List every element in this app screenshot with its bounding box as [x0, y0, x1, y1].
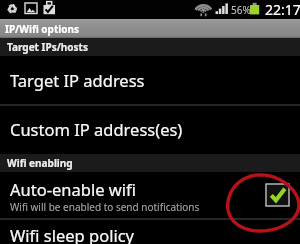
button[interactable]: IP/Wifi options — [0, 19, 300, 38]
staticText: Target IPs/hosts — [7, 40, 88, 54]
button[interactable]: Auto-enable wifi — [0, 172, 300, 218]
staticText: Custom IP address(es) — [10, 118, 183, 140]
staticText: 56% — [231, 3, 251, 17]
staticText: Wifi will be enabled to send notificatio… — [10, 200, 200, 214]
staticText: 22:17 — [265, 0, 300, 19]
staticText: Wifi enabling — [7, 156, 73, 170]
button[interactable]: Auto-enable wifi checkbox — [266, 184, 289, 206]
staticText: Wifi sleep policy — [10, 224, 135, 244]
staticText: IP/Wifi options — [5, 22, 80, 36]
button[interactable]: Target IP address — [0, 56, 300, 104]
staticText: Auto-enable wifi — [10, 178, 136, 200]
button[interactable]: Wifi sleep policy — [0, 220, 300, 244]
staticText: Target IP address — [10, 69, 145, 91]
button[interactable]: Custom IP address(es) — [0, 106, 300, 154]
